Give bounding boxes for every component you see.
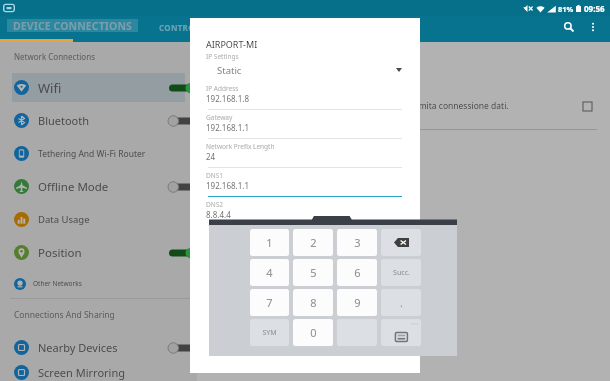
button[interactable]: Tethering And Wi-Fi Router	[0, 137, 197, 170]
staticText: Succ.	[393, 268, 410, 278]
staticText: Nearby Devices	[38, 340, 118, 355]
staticText: .	[400, 295, 403, 310]
button[interactable]: Succ.	[381, 259, 421, 286]
staticText: DEVICE CONNECTIONS	[13, 19, 132, 32]
button[interactable]: SYM	[250, 319, 289, 346]
staticText: DNS1	[206, 171, 223, 180]
staticText: Wifi	[38, 79, 62, 97]
staticText: 09:56	[584, 3, 605, 14]
button[interactable]: 9	[337, 289, 377, 316]
button[interactable]: Bluetooth	[0, 104, 197, 137]
staticText: 4	[266, 265, 273, 280]
button[interactable]: Gateway	[206, 110, 406, 139]
staticText: 81%	[558, 4, 574, 14]
staticText: 192.168.1.8	[206, 93, 250, 104]
staticText: Other Networks	[33, 279, 82, 288]
staticText: 192.168.1.1	[206, 122, 250, 133]
button[interactable]	[167, 245, 197, 261]
button[interactable]: DNS2	[206, 197, 406, 226]
button[interactable]: 4	[250, 259, 289, 286]
button[interactable]	[167, 80, 197, 96]
staticText: 7	[266, 295, 273, 310]
button[interactable]: Network Prefix Length	[206, 139, 406, 168]
staticText: 0	[310, 325, 317, 340]
staticText: CONTROLS	[159, 22, 205, 33]
staticText: 5	[310, 265, 317, 280]
staticText: 24	[206, 151, 216, 162]
button[interactable]	[167, 340, 197, 356]
staticText: 9	[354, 295, 361, 310]
staticText: SYM	[262, 328, 277, 338]
staticText: Data Usage	[38, 213, 90, 226]
button[interactable]: Offline Mode	[0, 170, 197, 203]
staticText: Position	[38, 245, 82, 261]
button[interactable]: Other Networks	[0, 269, 197, 298]
staticText: Network Connections	[14, 51, 95, 62]
staticText: Limita connessione dati.	[412, 100, 509, 112]
button[interactable]	[167, 179, 197, 195]
staticText: Offline Mode	[38, 179, 109, 195]
staticText: DNS2	[206, 200, 223, 209]
button[interactable]: 7	[250, 289, 289, 316]
staticText: 3	[354, 235, 361, 250]
button[interactable]: Search	[558, 16, 580, 38]
staticText: Network Prefix Length	[206, 142, 275, 151]
staticText: IP Address	[206, 84, 239, 93]
staticText: Bluetooth	[38, 113, 90, 128]
staticText: Connections And Sharing	[14, 309, 115, 321]
staticText: 8.8.4.4	[206, 209, 231, 220]
staticText: 6	[354, 265, 361, 280]
button[interactable]: 5	[293, 259, 333, 286]
button[interactable]: More options	[582, 16, 604, 38]
staticText: Gateway	[206, 113, 233, 122]
button[interactable]: IP Address	[206, 81, 406, 110]
button[interactable]: Nearby Devices	[0, 331, 197, 364]
button[interactable]: Data Usage	[0, 203, 197, 236]
staticText: 192.168.1.1	[206, 180, 250, 191]
button[interactable]: Screen Mirroring	[0, 364, 197, 381]
button[interactable]: Limita connessione dati.	[197, 83, 610, 129]
button[interactable]: 6	[337, 259, 377, 286]
button[interactable]: 1	[250, 229, 289, 256]
button[interactable]: 8	[293, 289, 333, 316]
button[interactable]: CONTROLS	[146, 20, 266, 34]
staticText: Static	[217, 64, 242, 77]
staticText: AIRPORT-MI	[206, 38, 258, 50]
button[interactable]: 3	[337, 229, 377, 256]
button[interactable]: Backspace	[381, 229, 421, 256]
staticText: 2	[310, 235, 317, 250]
button[interactable]: 2	[293, 229, 333, 256]
staticText: IP Settings	[206, 52, 239, 61]
staticText: Tethering And Wi-Fi Router	[38, 148, 146, 160]
button[interactable]: Wifi	[0, 71, 197, 104]
button[interactable]: Position	[0, 236, 197, 269]
staticText: 1	[266, 235, 273, 250]
button[interactable]: DNS1	[206, 168, 406, 197]
button[interactable]: Static	[206, 61, 406, 79]
button[interactable]	[167, 113, 197, 129]
button[interactable]: 0	[293, 319, 333, 346]
button[interactable]: Switch keyboard	[381, 319, 421, 346]
staticText: 8	[310, 295, 317, 310]
button[interactable]: DEVICE CONNECTIONS	[7, 19, 138, 32]
staticText: Screen Mirroring	[38, 365, 125, 380]
